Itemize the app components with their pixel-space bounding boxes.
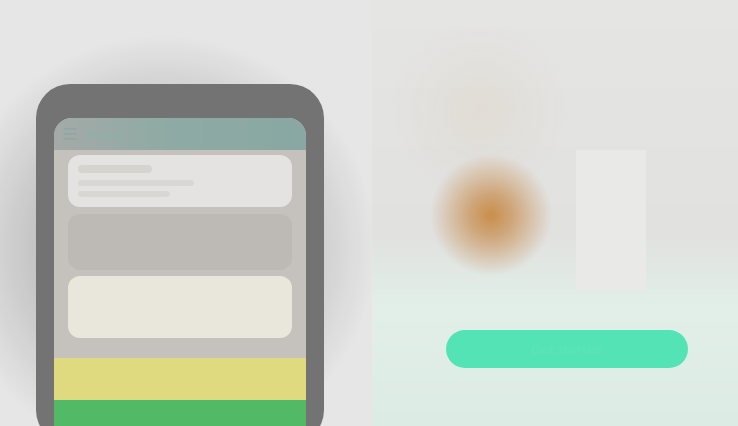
button[interactable]: Get started <box>446 330 688 368</box>
button[interactable]: Menu <box>54 118 306 150</box>
staticText: Overview <box>85 128 126 140</box>
other: Menu <box>64 128 77 141</box>
button[interactable] <box>68 276 292 338</box>
button[interactable] <box>68 155 292 207</box>
